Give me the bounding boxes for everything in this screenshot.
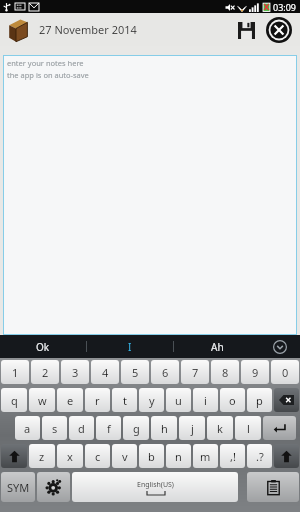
staticText: m [200, 449, 211, 464]
button[interactable]: q [1, 388, 27, 412]
staticText: 03:09 [273, 1, 297, 13]
button[interactable]: Ok [0, 335, 86, 358]
button[interactable]: d [69, 416, 94, 440]
button[interactable]: m [193, 444, 218, 468]
button[interactable]: s [42, 416, 67, 440]
button[interactable]: 6 [151, 360, 179, 384]
button[interactable]: g [123, 416, 149, 440]
staticText: g [133, 421, 140, 436]
button[interactable]: j [179, 416, 205, 440]
button[interactable]: n [166, 444, 191, 468]
button[interactable]: English(US) [72, 472, 238, 502]
staticText: n [175, 449, 182, 464]
staticText: 2 [42, 365, 49, 380]
button[interactable]: 2 [31, 360, 59, 384]
button[interactable]: Backspace [274, 388, 299, 412]
button[interactable]: 4 [91, 360, 119, 384]
button[interactable]: 0 [271, 360, 299, 384]
button[interactable]: 7 [181, 360, 209, 384]
button[interactable]: x [57, 444, 83, 468]
staticText: 8 [222, 365, 229, 380]
staticText: t [123, 393, 127, 408]
button[interactable]: o [220, 388, 245, 412]
staticText: z [39, 449, 45, 464]
staticText: 27 November 2014 [39, 22, 231, 37]
staticText: u [175, 393, 182, 408]
staticText: 7 [192, 365, 199, 380]
button[interactable]: 8 [211, 360, 239, 384]
staticText: 0 [282, 365, 289, 380]
staticText: 9 [252, 365, 259, 380]
staticText: 5 [132, 365, 139, 380]
staticText: .? [256, 449, 264, 464]
staticText: k [217, 421, 223, 436]
staticText: c [95, 449, 101, 464]
button[interactable]: y [139, 388, 164, 412]
staticText: v [122, 449, 128, 464]
button[interactable]: v [112, 444, 137, 468]
button[interactable]: Close [263, 14, 295, 46]
button[interactable]: z [29, 444, 55, 468]
button[interactable]: t [112, 388, 137, 412]
staticText: 4 [102, 365, 109, 380]
button[interactable]: Shift [274, 444, 299, 468]
button[interactable]: e [57, 388, 83, 412]
staticText: r [95, 393, 100, 408]
staticText: x [67, 449, 73, 464]
staticText: enter your notes here [7, 58, 84, 68]
staticText: e [67, 393, 74, 408]
button[interactable]: r [85, 388, 110, 412]
button[interactable]: k [207, 416, 233, 440]
button[interactable]: 9 [241, 360, 269, 384]
staticText: h [161, 421, 168, 436]
button[interactable]: SYM [1, 472, 35, 502]
staticText: 6 [162, 365, 169, 380]
staticText: j [191, 421, 194, 436]
button[interactable]: a [15, 416, 40, 440]
button[interactable]: enter your notes here [3, 55, 297, 335]
staticText: Ok [36, 340, 50, 354]
button[interactable]: ,! [220, 444, 245, 468]
staticText: a [24, 421, 31, 436]
button[interactable]: h [151, 416, 177, 440]
button[interactable]: Ah [174, 335, 260, 358]
button[interactable]: i [193, 388, 218, 412]
button[interactable]: c [85, 444, 110, 468]
button[interactable]: w [29, 388, 55, 412]
button[interactable]: 1 [1, 360, 29, 384]
staticText: s [52, 421, 58, 436]
staticText: i [204, 393, 207, 408]
button[interactable]: Input settings [37, 472, 70, 502]
button[interactable]: u [166, 388, 191, 412]
button[interactable]: .? [247, 444, 272, 468]
staticText: the app is on auto-save [7, 70, 89, 80]
staticText: f [107, 421, 111, 436]
staticText: l [247, 421, 250, 436]
staticText: w [38, 393, 47, 408]
staticText: b [148, 449, 155, 464]
staticText: SYM [7, 480, 30, 495]
button[interactable]: I [87, 335, 173, 358]
staticText: y [149, 393, 155, 408]
button[interactable]: 3 [61, 360, 89, 384]
button[interactable]: Notebook [5, 17, 31, 43]
button[interactable]: l [235, 416, 261, 440]
button[interactable]: 5 [121, 360, 149, 384]
button[interactable]: p [247, 388, 272, 412]
button[interactable]: b [139, 444, 164, 468]
button[interactable]: f [96, 416, 121, 440]
staticText: o [229, 393, 236, 408]
staticText: English(US) [137, 480, 174, 490]
button[interactable]: Enter [263, 416, 296, 440]
staticText: 1 [12, 365, 19, 380]
staticText: p [256, 393, 263, 408]
staticText: d [78, 421, 85, 436]
staticText: q [11, 393, 18, 408]
staticText: ,! [230, 449, 236, 464]
button[interactable]: Shift [1, 444, 27, 468]
staticText: I [128, 340, 132, 354]
button[interactable]: Save [231, 15, 261, 45]
staticText: 3 [72, 365, 79, 380]
button[interactable]: Expand suggestions [260, 335, 300, 358]
button[interactable]: Clipboard [247, 472, 299, 502]
